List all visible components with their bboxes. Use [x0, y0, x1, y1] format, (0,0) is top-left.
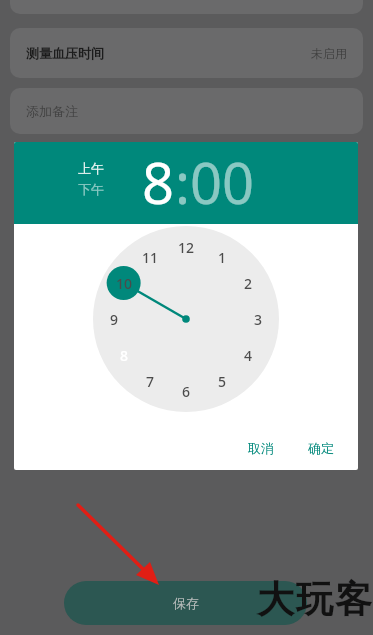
- staticText: 4: [244, 346, 253, 365]
- staticText: 大: [256, 576, 295, 623]
- staticText: 6: [182, 382, 191, 401]
- staticText: 9: [110, 310, 119, 329]
- staticText: 1: [218, 248, 227, 267]
- staticText: 上午: [78, 160, 104, 176]
- staticText: 添加备注: [26, 103, 78, 119]
- staticText: 未启用: [311, 46, 347, 61]
- button[interactable]: 10: [110, 273, 138, 293]
- button[interactable]: 12: [172, 237, 200, 257]
- button[interactable]: 确定: [296, 431, 346, 465]
- button[interactable]: 添加备注: [10, 88, 363, 134]
- staticText: 保存: [173, 595, 199, 611]
- button[interactable]: 2: [234, 273, 262, 293]
- staticText: 取消: [248, 440, 274, 456]
- staticText: 8: [142, 144, 175, 220]
- staticText: 7: [146, 372, 155, 391]
- staticText: 5: [218, 372, 227, 391]
- button[interactable]: 11: [136, 247, 164, 267]
- staticText: 玩: [295, 576, 334, 623]
- button[interactable]: 6: [172, 381, 200, 401]
- staticText: 10: [116, 274, 133, 293]
- staticText: 12: [178, 238, 195, 257]
- button[interactable]: 8: [142, 144, 255, 220]
- button[interactable]: 8: [110, 345, 138, 365]
- button[interactable]: 5: [208, 371, 236, 391]
- button[interactable]: 1: [208, 247, 236, 267]
- staticText: 8: [120, 346, 129, 365]
- staticText: 3: [254, 310, 263, 329]
- staticText: :00: [175, 144, 255, 220]
- button[interactable]: 保存: [64, 581, 307, 625]
- staticText: 确定: [308, 440, 334, 456]
- button[interactable]: 上午: [78, 160, 104, 176]
- button[interactable]: 取消: [236, 431, 286, 465]
- button[interactable]: 4: [234, 345, 262, 365]
- button[interactable]: 下午: [78, 181, 104, 197]
- staticText: 11: [142, 248, 159, 267]
- staticText: 客: [334, 576, 373, 623]
- staticText: 下午: [78, 181, 104, 197]
- button[interactable]: 3: [244, 309, 272, 329]
- staticText: 2: [244, 274, 253, 293]
- button[interactable]: 测量血压时间: [10, 28, 363, 78]
- other: Annotation arrow: [0, 0, 373, 635]
- staticText: 测量血压时间: [26, 45, 104, 61]
- button[interactable]: 7: [136, 371, 164, 391]
- button[interactable]: 9: [100, 309, 128, 329]
